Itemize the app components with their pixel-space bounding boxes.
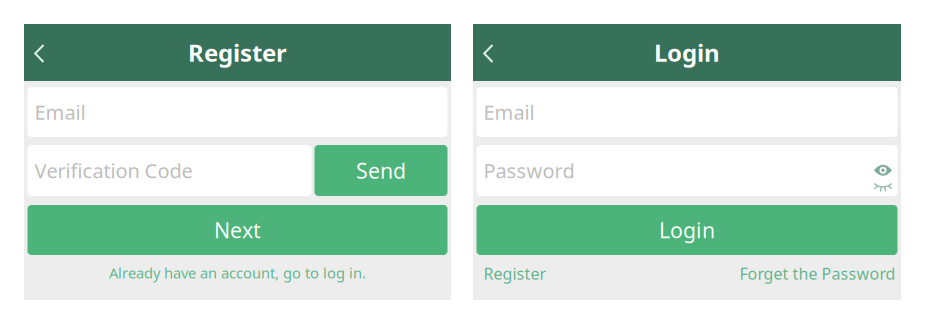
button[interactable]: Login — [476, 205, 897, 255]
staticText: Forget the Password — [739, 263, 895, 284]
staticText: Verification Code — [34, 157, 192, 184]
staticText: Send — [356, 156, 406, 185]
staticText: Login — [654, 37, 720, 68]
staticText: Email — [34, 99, 85, 125]
staticText: Next — [214, 216, 261, 244]
button[interactable]: Back — [473, 29, 508, 76]
button[interactable]: Forget the Password — [739, 259, 897, 288]
button[interactable]: Back — [24, 29, 59, 76]
button[interactable]: Show password — [867, 149, 897, 192]
button[interactable]: Already have an account, go to log in. — [27, 259, 447, 286]
staticText: Password — [483, 157, 574, 184]
staticText: Already have an account, go to log in. — [109, 263, 366, 282]
staticText: Email — [483, 99, 534, 125]
button[interactable]: Next — [27, 205, 447, 255]
button[interactable]: Send — [314, 145, 447, 196]
button[interactable]: Register — [476, 259, 546, 288]
staticText: Register — [188, 37, 287, 68]
staticText: Login — [659, 216, 715, 244]
staticText: Register — [483, 263, 546, 284]
